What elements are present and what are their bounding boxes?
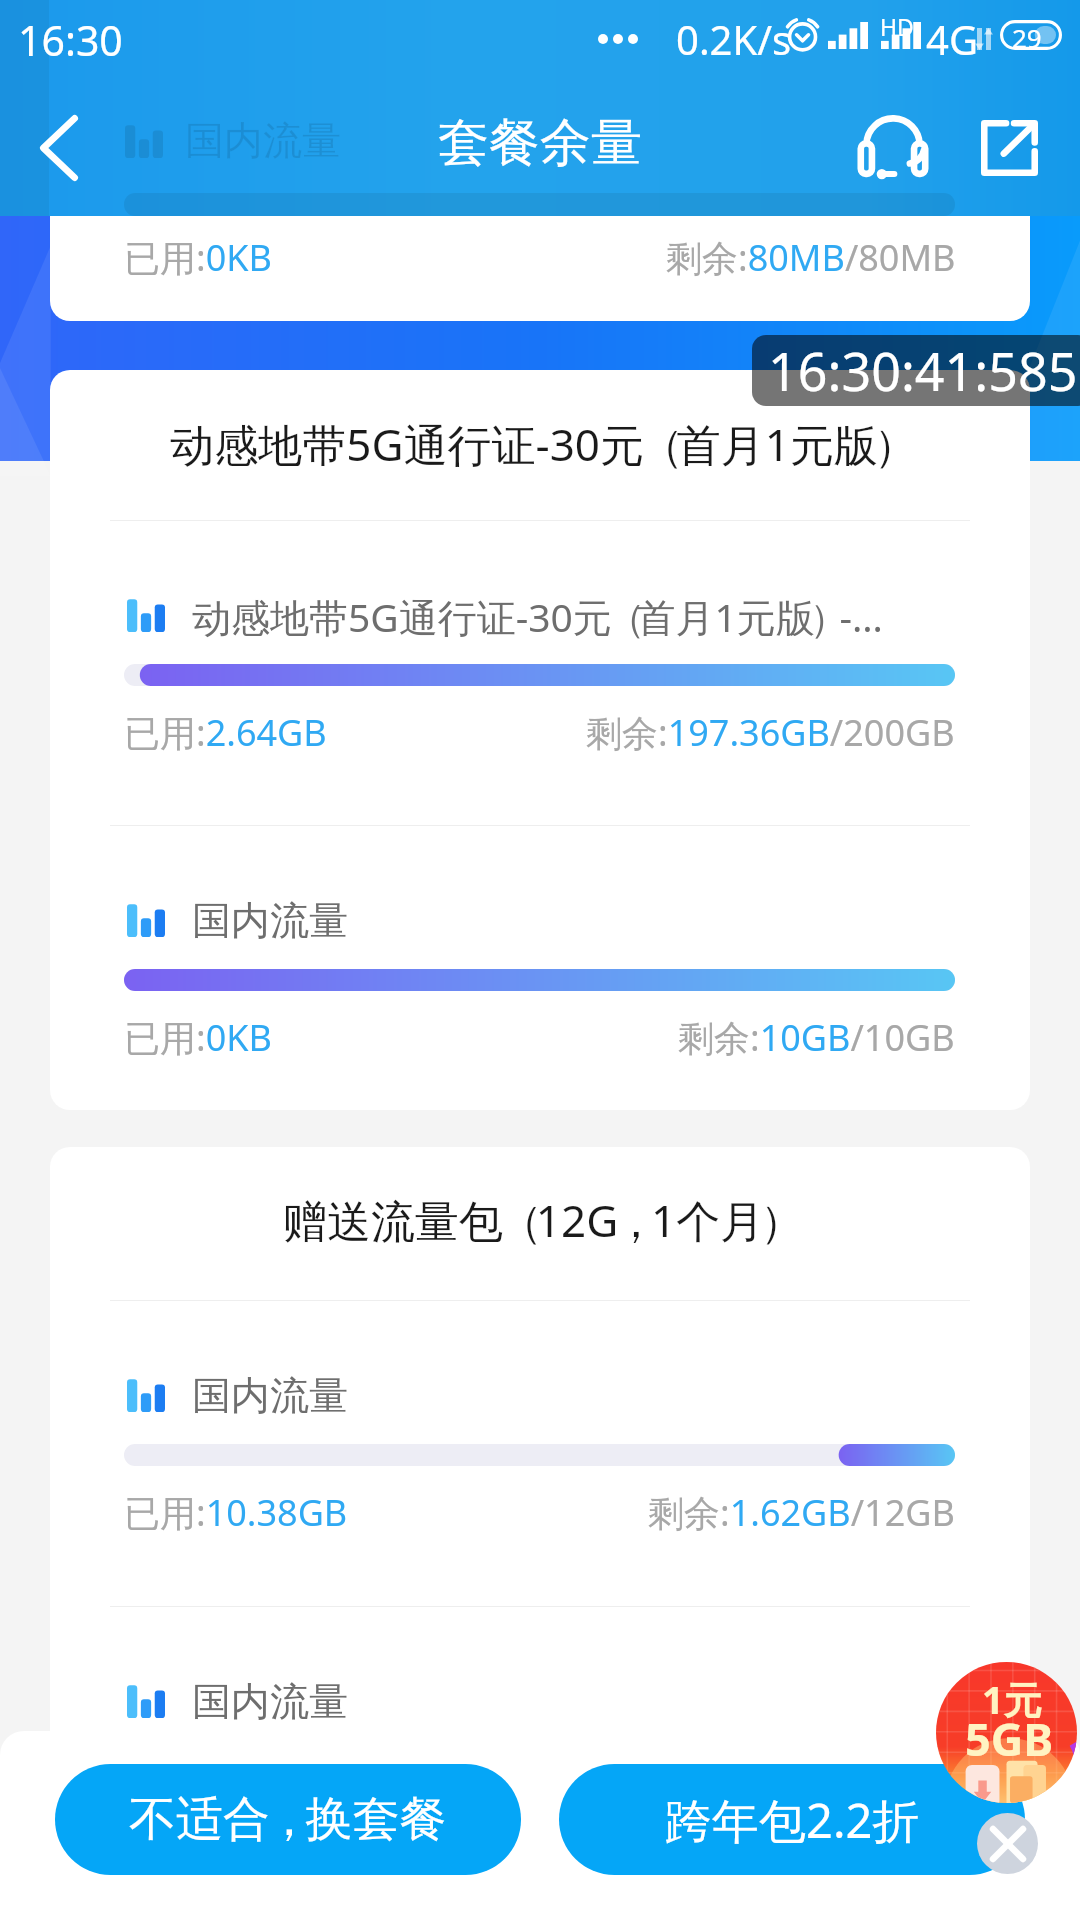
button[interactable]: 1 yuan 5GB promotion: [936, 1662, 1077, 1803]
staticText: 1元: [982, 1673, 1042, 1725]
staticText: 29: [1012, 20, 1042, 50]
staticText: 剩余:1.62GB/12GB: [648, 1488, 955, 1537]
staticText: 剩余:80MB/80MB: [666, 233, 956, 282]
button[interactable]: Share: [940, 80, 1076, 216]
staticText: 国内流量: [192, 1677, 348, 1726]
staticText: 动感地带5G通行证-30元（首月1元版）: [170, 414, 911, 474]
staticText: 剩余:10GB/10GB: [678, 1794, 955, 1843]
staticText: 已用:0KB: [124, 1794, 272, 1843]
button[interactable]: 已用:0KB: [50, 216, 1030, 321]
staticText: 剩余:197.36GB/200GB: [586, 708, 955, 757]
staticText: 不适合，换套餐: [129, 1790, 447, 1849]
staticText: 国内流量: [192, 1371, 348, 1420]
staticText: 国内流量: [192, 896, 348, 945]
staticText: 已用:10.38GB: [124, 1488, 348, 1537]
staticText: 国内流量: [185, 116, 341, 165]
button[interactable]: Back: [0, 80, 126, 216]
staticText: 赠送流量包（12G，1个月）: [283, 1190, 797, 1250]
button[interactable]: Customer support: [825, 80, 961, 216]
staticText: 套餐余量: [438, 111, 642, 175]
staticText: 已用:0KB: [124, 233, 272, 282]
staticText: 16:30:41:585: [768, 335, 1078, 406]
staticText: 16:30: [18, 12, 123, 68]
staticText: 跨年包2.2折: [665, 1788, 920, 1852]
staticText: HD: [880, 11, 914, 42]
staticText: 已用:0KB: [124, 1013, 272, 1062]
button[interactable]: 跨年包2.2折: [559, 1764, 1025, 1875]
staticText: 已用:2.64GB: [124, 708, 327, 757]
staticText: 0.2K/s: [676, 12, 792, 66]
staticText: 动感地带5G通行证-30元（首月1元版）-…: [192, 590, 883, 640]
staticText: 5GB: [965, 1708, 1054, 1769]
button[interactable]: Close ad: [977, 1813, 1038, 1874]
button[interactable]: 不适合，换套餐: [55, 1764, 521, 1875]
staticText: 剩余:10GB/10GB: [678, 1013, 955, 1062]
staticText: 4G: [926, 12, 978, 66]
